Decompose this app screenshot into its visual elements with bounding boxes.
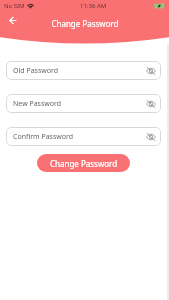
button[interactable]: Toggle password visibility [145,131,157,143]
staticText: Change Password [51,18,119,29]
button[interactable]: Back [3,11,21,29]
staticText: Old Password [13,66,59,76]
button[interactable]: New Password [6,94,161,113]
button[interactable]: Change Password [37,154,130,172]
staticText: Change Password [50,158,118,169]
button[interactable]: Toggle password visibility [145,98,157,110]
staticText: New Password [13,99,62,109]
staticText: Confirm Password [13,132,74,142]
button[interactable]: Confirm Password [6,127,161,146]
staticText: 11:36 AM [80,2,107,10]
button[interactable]: Toggle password visibility [145,65,157,77]
button[interactable]: Old Password [6,61,161,80]
staticText: No SIM [4,2,25,10]
